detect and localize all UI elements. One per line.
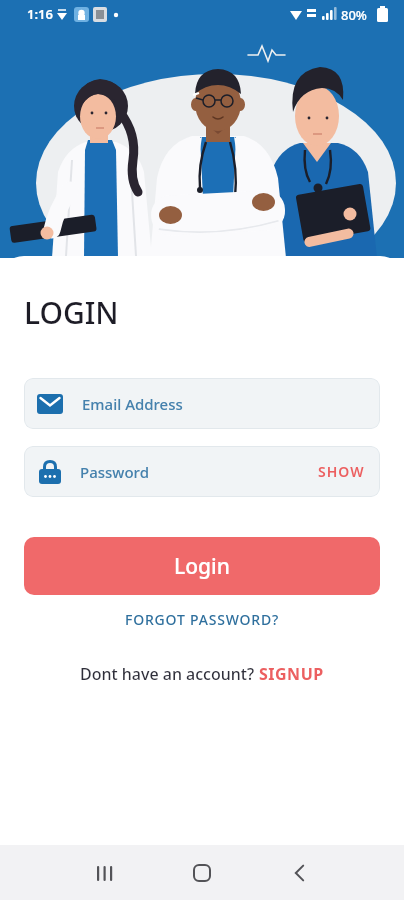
staticText: Dont have an account? <box>80 663 259 685</box>
button[interactable]: Password <box>24 446 380 497</box>
button[interactable]: FORGOT PASSWORD? <box>125 610 280 629</box>
button[interactable]: Login <box>24 537 380 595</box>
button[interactable] <box>277 851 321 895</box>
staticText: FORGOT PASSWORD? <box>125 610 280 629</box>
staticText: Email Address <box>82 394 183 414</box>
staticText: 1:16 <box>27 5 53 23</box>
staticText: SIGNUP <box>259 663 324 685</box>
staticText: LOGIN <box>24 292 119 333</box>
button[interactable]: SIGNUP <box>259 663 324 685</box>
button[interactable]: SHOW <box>318 462 380 481</box>
button[interactable] <box>180 851 224 895</box>
staticText: 80% <box>341 6 367 24</box>
staticText: SHOW <box>318 462 365 481</box>
button[interactable]: Email Address <box>24 378 380 429</box>
staticText: Password <box>80 462 149 482</box>
staticText: Login <box>174 552 230 581</box>
button[interactable] <box>83 851 127 895</box>
